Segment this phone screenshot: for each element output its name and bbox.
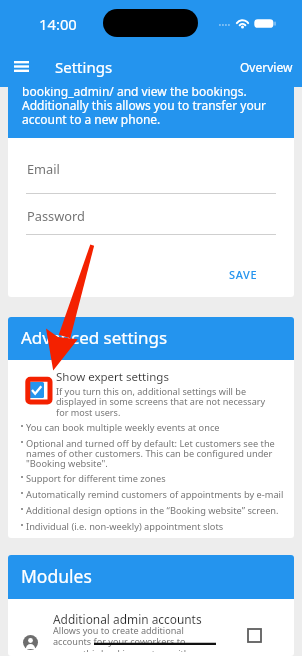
staticText: Email	[27, 160, 60, 177]
staticText: Advanced settings	[21, 326, 168, 349]
button[interactable]: Additional admin accounts, unchecked	[239, 620, 269, 650]
staticText: Modules	[21, 564, 92, 588]
button[interactable]: Show expert settings, checked	[24, 378, 48, 402]
staticText: Password	[27, 207, 85, 224]
staticText: Overview	[240, 59, 293, 75]
staticText: booking_admin/ and view the bookings. Ad…	[22, 87, 267, 127]
staticText: You can book multiple weekly events at o…	[26, 421, 220, 434]
staticText: Show expert settings	[56, 369, 169, 385]
button[interactable]: Open navigation menu	[7, 52, 36, 81]
staticText: Additional design options in the “Bookin…	[26, 504, 279, 517]
staticText: SAVE	[229, 267, 258, 282]
staticText: Allows you to create additional accounts…	[53, 624, 215, 652]
staticText: Support for different time zones	[26, 472, 166, 485]
staticText: Optional and turned off by default: Let …	[26, 437, 286, 469]
staticText: Automatically remind customers of appoin…	[26, 488, 284, 501]
staticText: If you turn this on, additional settings…	[56, 385, 272, 419]
staticText: Individual (i.e. non-weekly) appointment…	[26, 520, 224, 533]
staticText: Additional admin accounts	[53, 611, 202, 627]
staticText: Settings	[55, 57, 113, 77]
button[interactable]: SAVE	[221, 263, 266, 286]
button[interactable]: Overview	[232, 52, 302, 82]
staticText: 14:00	[39, 14, 77, 34]
